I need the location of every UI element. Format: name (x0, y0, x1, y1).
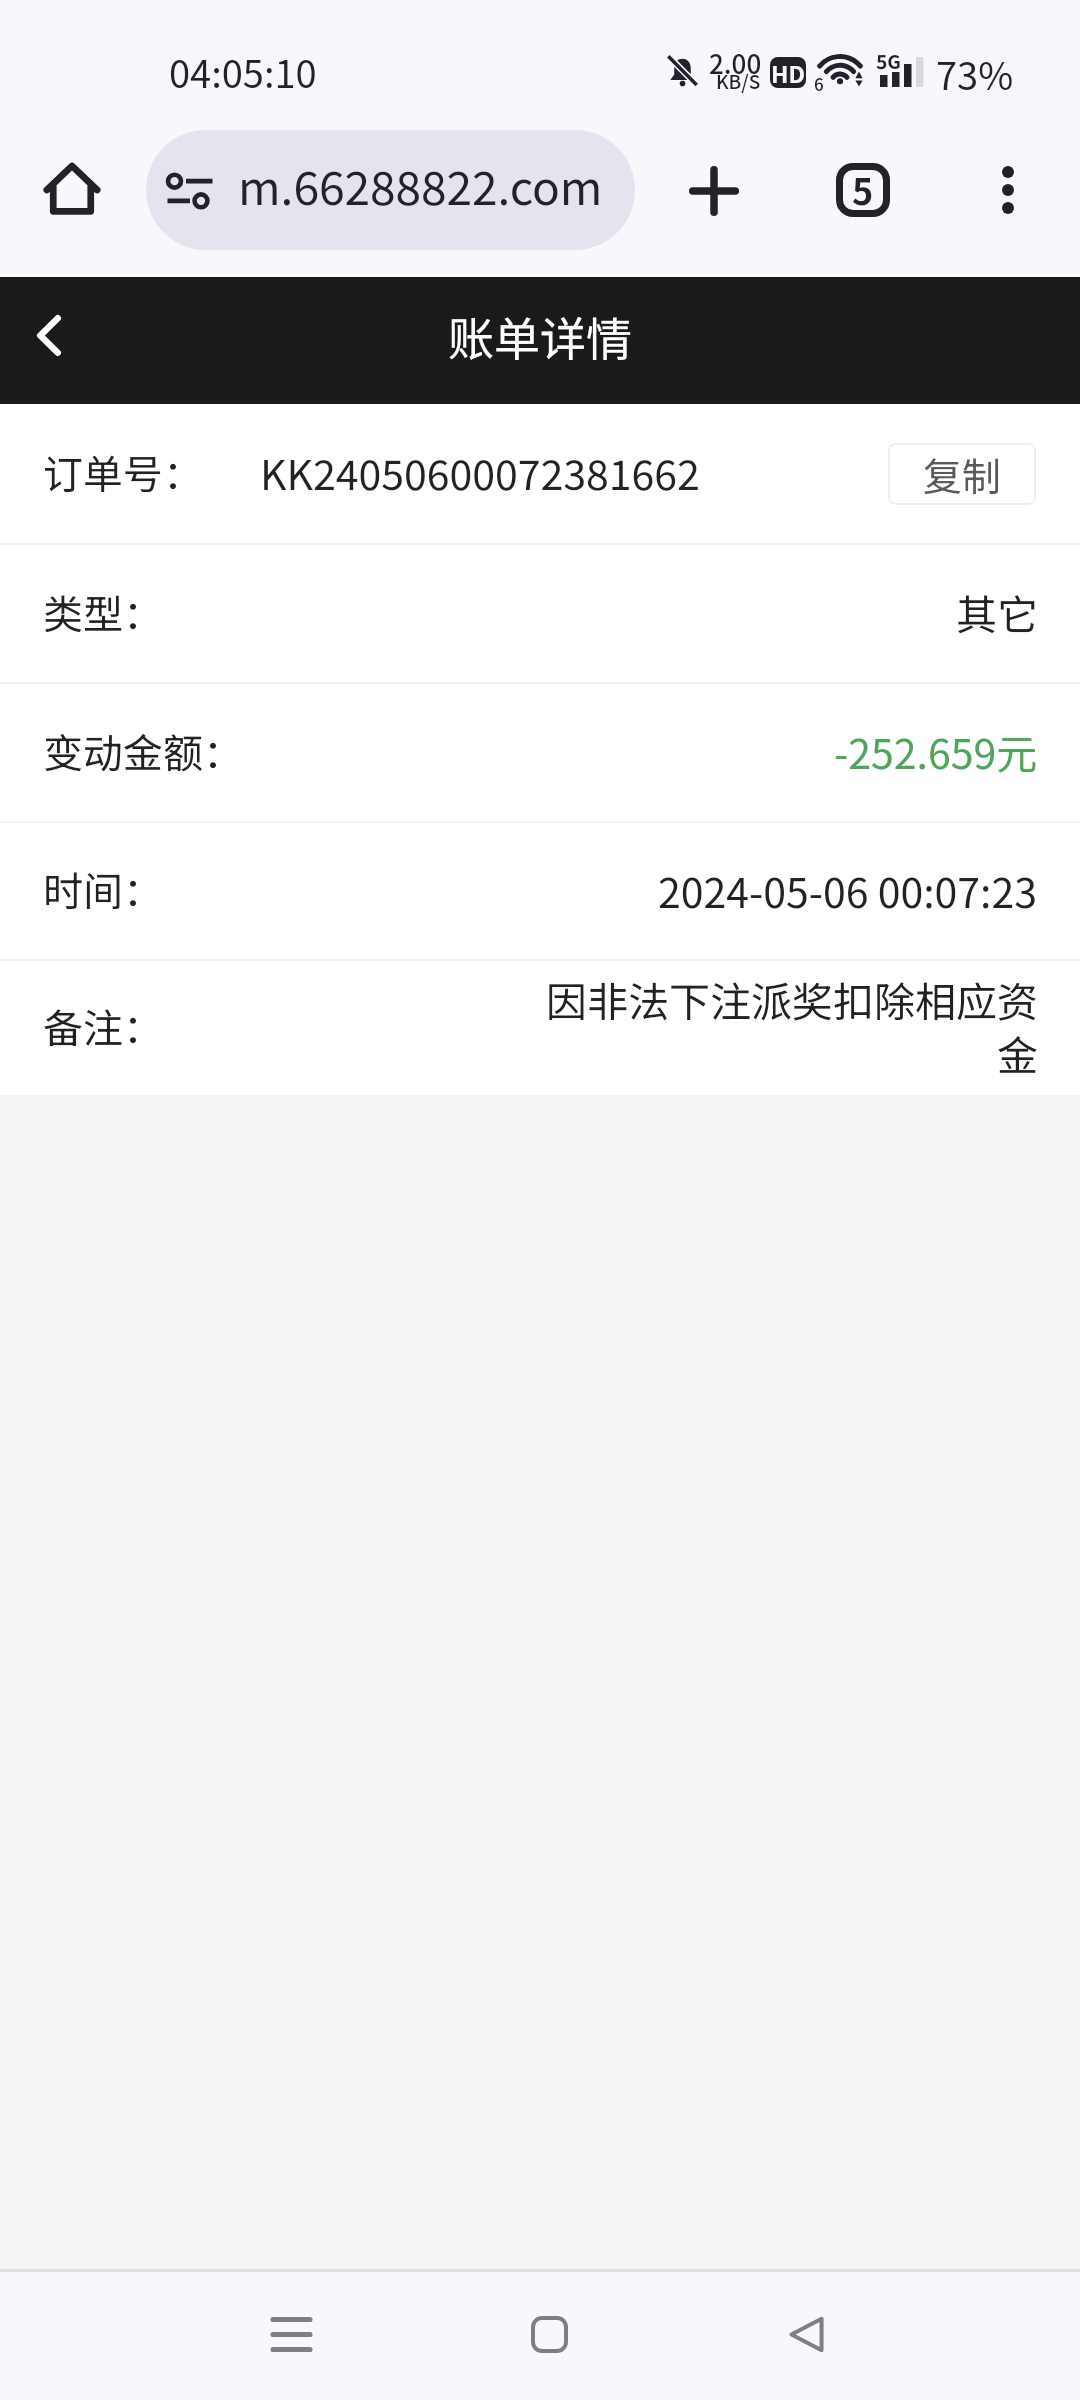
staticText: 5 (852, 163, 874, 215)
staticText: 04:05:10 (169, 44, 317, 99)
staticText: 订单号： (43, 443, 203, 501)
button[interactable]: Tabs (818, 145, 908, 235)
button[interactable]: New tab (669, 146, 759, 236)
staticText: KK24050600072381662 (260, 442, 700, 501)
staticText: 2.00 (709, 44, 762, 82)
button[interactable]: 变动金额： (0, 684, 1080, 821)
staticText: 其它 (956, 582, 1038, 641)
staticText: 变动金额： (43, 722, 243, 780)
staticText: 备注： (43, 997, 163, 1055)
staticText: -252.659元 (834, 721, 1038, 780)
staticText: 2024-05-06 00:07:23 (658, 860, 1038, 919)
button[interactable]: 时间： (0, 823, 1080, 959)
button[interactable]: 订单号： (0, 404, 1080, 543)
button[interactable]: Home (27, 145, 117, 235)
button[interactable]: 复制 (888, 443, 1036, 505)
button[interactable]: 备注： (0, 961, 1080, 1095)
button[interactable]: 类型： (0, 545, 1080, 682)
button[interactable]: Recent apps (246, 2289, 336, 2379)
staticText: 账单详情 (448, 303, 632, 370)
staticText: HD (771, 57, 805, 87)
staticText: 5G (876, 47, 901, 75)
staticText: 类型： (43, 583, 163, 641)
button[interactable]: More options (963, 145, 1053, 235)
button[interactable]: m.66288822.com (146, 130, 635, 250)
staticText: 因非法下注派奖扣除相应资金 (544, 969, 1038, 1083)
staticText: 6 (814, 71, 824, 96)
button[interactable]: Back (761, 2289, 851, 2379)
staticText: KB/S (716, 67, 761, 95)
staticText: 时间： (43, 860, 163, 918)
staticText: 复制 (923, 446, 1002, 502)
staticText: m.66288822.com (238, 152, 603, 219)
button[interactable]: Home (504, 2289, 594, 2379)
staticText: 73% (936, 46, 1014, 101)
button[interactable]: Back (4, 290, 94, 380)
